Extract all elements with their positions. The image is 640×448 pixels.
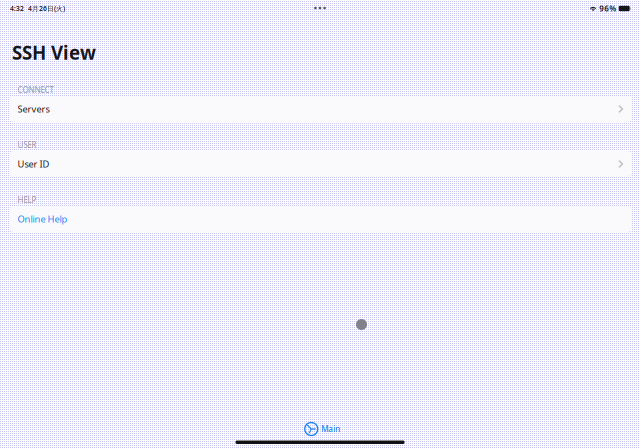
staticText: SSH View: [12, 40, 96, 65]
staticText: Main: [321, 424, 340, 434]
staticText: Servers: [17, 103, 49, 115]
button[interactable]: Online Help: [9, 206, 632, 232]
staticText: HELP: [17, 195, 36, 205]
staticText: User ID: [17, 158, 49, 170]
button[interactable]: Servers: [9, 96, 632, 122]
staticText: USER: [17, 140, 36, 150]
staticText: CONNECT: [17, 85, 53, 95]
staticText: Online Help: [17, 213, 67, 225]
staticText: 4:32 4月26日(火): [10, 4, 65, 13]
staticText: 96%: [599, 3, 616, 14]
button[interactable]: User ID: [9, 151, 632, 177]
button[interactable]: Main: [295, 419, 350, 438]
